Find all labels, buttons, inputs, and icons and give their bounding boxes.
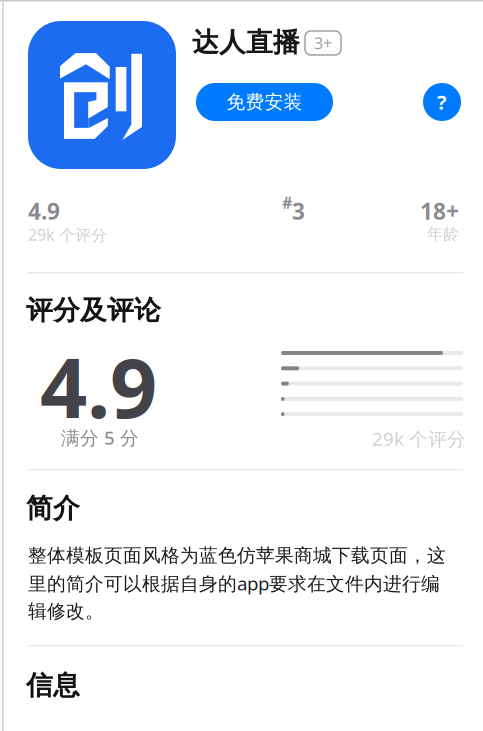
staticText: 4.9 xyxy=(28,196,60,226)
staticText: 4.9 xyxy=(40,331,157,441)
staticText: 信息 xyxy=(26,669,80,702)
staticText: 整体模板页面风格为蓝色仿苹果商城下载页面，这里的简介可以根据自身的app要求在文… xyxy=(28,544,446,623)
staticText: # xyxy=(282,192,292,213)
staticText: 简介 xyxy=(26,492,80,525)
button[interactable]: 帮助 xyxy=(423,83,461,121)
staticText: ? xyxy=(437,89,447,115)
staticText: 3+ xyxy=(314,32,332,54)
staticText: 29k 个评分 xyxy=(372,426,466,451)
staticText: 达人直播 xyxy=(192,26,300,59)
staticText: 免费安装 xyxy=(226,90,302,113)
staticText: 年龄 xyxy=(427,224,459,244)
staticText: 18+ xyxy=(420,196,459,226)
staticText: 满分 5 分 xyxy=(61,425,139,450)
staticText: 29k 个评分 xyxy=(28,224,107,245)
staticText: 3 xyxy=(292,196,305,226)
button[interactable]: 免费安装 xyxy=(196,83,333,121)
staticText: 评分及评论 xyxy=(26,294,161,327)
